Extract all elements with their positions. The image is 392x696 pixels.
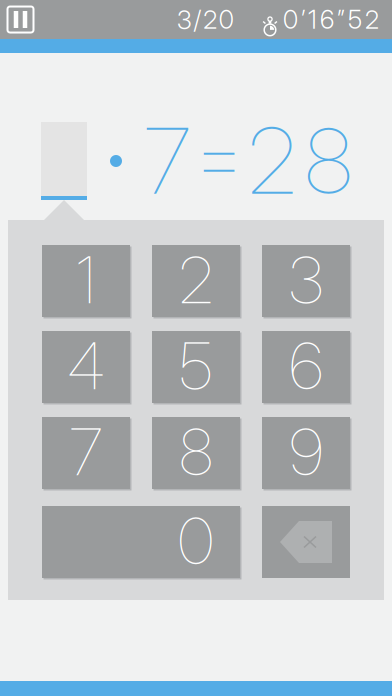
button[interactable]: 9 <box>262 417 350 489</box>
button[interactable]: 5 <box>152 331 240 403</box>
staticText: 3 <box>289 241 323 319</box>
button[interactable]: 3 <box>262 245 350 317</box>
staticText: 4 <box>67 327 104 405</box>
staticText: 2 <box>179 241 213 319</box>
button[interactable]: Pause <box>7 6 34 33</box>
staticText: 0 <box>178 502 214 580</box>
staticText: 8 <box>179 413 212 491</box>
button[interactable]: 4 <box>42 331 130 403</box>
button[interactable]: 6 <box>262 331 350 403</box>
staticText: 7 <box>144 106 191 216</box>
staticText: 5 <box>179 327 212 405</box>
staticText: 7 <box>69 413 102 491</box>
button[interactable]: 1 <box>42 245 130 317</box>
staticText: 8 <box>305 106 352 216</box>
staticText: 2 <box>248 106 297 216</box>
staticText: 3/20 <box>177 4 234 35</box>
button[interactable]: 7 <box>42 417 130 489</box>
button[interactable]: 0 <box>42 506 240 578</box>
button[interactable]: 2 <box>152 245 240 317</box>
button[interactable]: Delete <box>262 506 350 578</box>
staticText: = <box>193 100 245 210</box>
button[interactable]: 8 <box>152 417 240 489</box>
staticText: 0’16”52 <box>283 4 379 35</box>
staticText: 1 <box>76 241 96 319</box>
staticText: 9 <box>289 413 322 491</box>
staticText: 6 <box>289 327 322 405</box>
